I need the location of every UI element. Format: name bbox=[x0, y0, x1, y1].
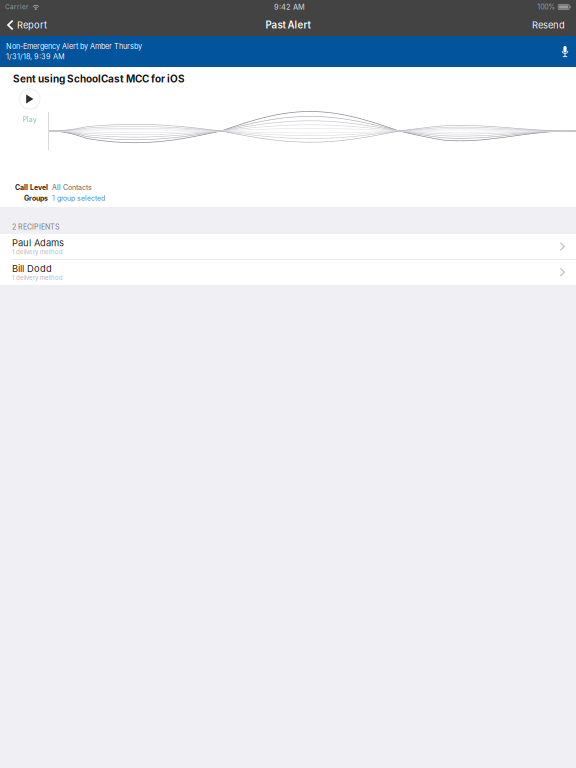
button[interactable]: Report bbox=[0, 14, 54, 35]
staticText: 100% bbox=[537, 3, 555, 11]
staticText: Past Alert bbox=[265, 19, 310, 31]
staticText: Paul Adams bbox=[12, 237, 64, 248]
staticText: Groups bbox=[24, 194, 48, 202]
staticText: 9:42 AM bbox=[274, 3, 305, 11]
button[interactable]: Bill Dodd bbox=[0, 260, 576, 285]
button[interactable]: Paul Adams bbox=[0, 234, 576, 259]
button[interactable]: 1 group selected bbox=[52, 194, 105, 202]
staticText: 2 RECIPIENTS bbox=[12, 223, 60, 231]
button[interactable]: Play bbox=[19, 88, 41, 110]
staticText: 1 group selected bbox=[52, 194, 105, 202]
staticText: Sent using SchoolCast MCC for iOS bbox=[13, 73, 185, 85]
staticText: 1 delivery method bbox=[12, 248, 63, 256]
staticText: All Contacts bbox=[52, 183, 92, 192]
staticText: 1/31/18, 9:39 AM bbox=[6, 52, 65, 61]
staticText: Bill Dodd bbox=[12, 263, 52, 274]
staticText: Report bbox=[17, 19, 47, 30]
button[interactable]: Resend bbox=[521, 13, 576, 36]
staticText: Resend bbox=[532, 19, 565, 30]
staticText: Play bbox=[23, 115, 37, 124]
staticText: Carrier bbox=[5, 3, 28, 11]
staticText: Non-Emergency Alert by Amber Thursby bbox=[6, 42, 142, 51]
staticText: Call Level bbox=[15, 183, 48, 192]
staticText: 1 delivery method bbox=[12, 274, 63, 281]
